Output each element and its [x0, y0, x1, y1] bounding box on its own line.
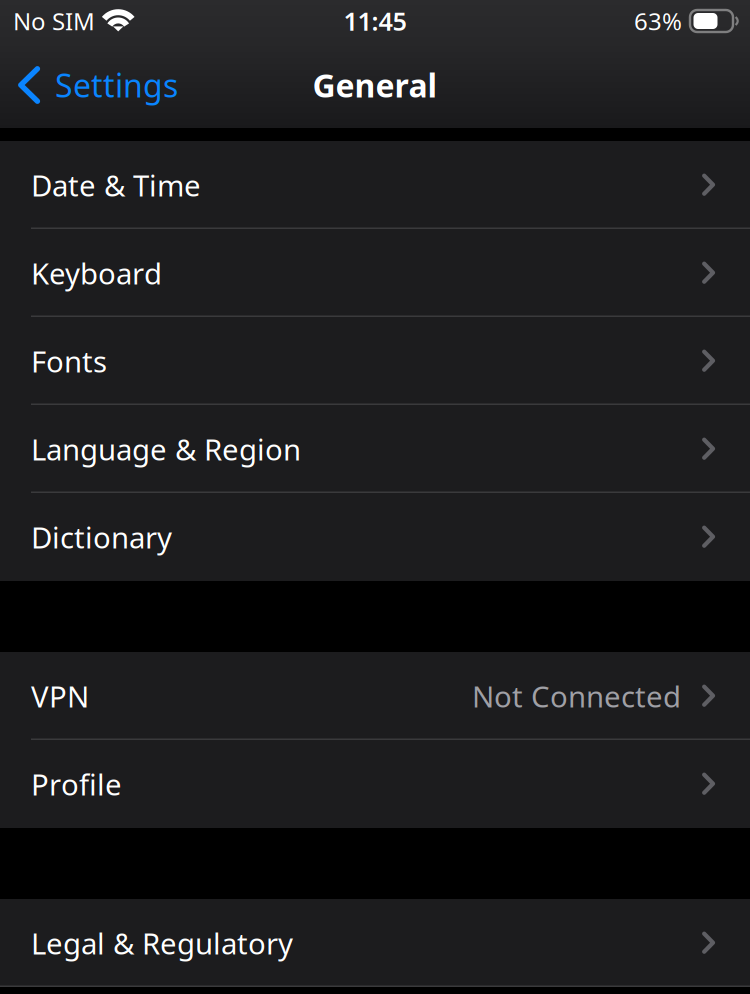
staticText: 11:45	[343, 4, 406, 38]
staticText: Profile	[31, 764, 122, 803]
staticText: General	[312, 64, 437, 106]
button[interactable]: Fonts	[0, 317, 750, 405]
staticText: Not Connected	[472, 676, 681, 715]
staticText: Settings	[55, 64, 178, 106]
staticText: Keyboard	[31, 253, 162, 292]
button[interactable]: Date & Time	[0, 141, 750, 229]
button[interactable]: VPN	[0, 652, 750, 740]
staticText: Date & Time	[31, 165, 201, 204]
button[interactable]: Profile	[0, 740, 750, 828]
staticText: 63%	[634, 5, 682, 37]
button[interactable]: Dictionary	[0, 493, 750, 581]
button[interactable]: Back to Settings	[0, 56, 192, 114]
button[interactable]: Language & Region	[0, 405, 750, 493]
staticText: Language & Region	[31, 429, 301, 468]
button[interactable]: Legal & Regulatory	[0, 899, 750, 987]
staticText: Legal & Regulatory	[31, 923, 293, 962]
staticText: VPN	[31, 676, 89, 715]
staticText: Dictionary	[31, 517, 172, 556]
staticText: No SIM	[13, 5, 95, 37]
staticText: Fonts	[31, 341, 107, 380]
button[interactable]: Keyboard	[0, 229, 750, 317]
